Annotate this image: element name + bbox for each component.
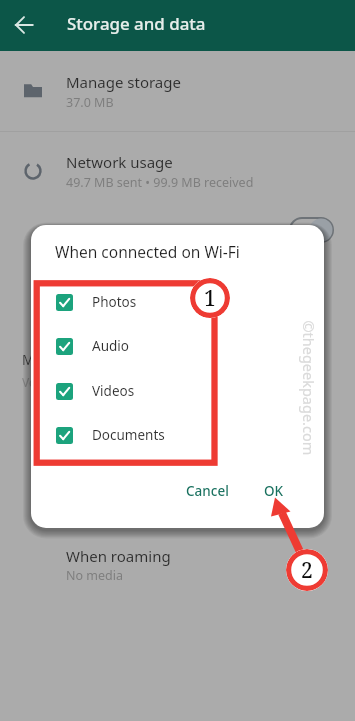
staticText: When connected on Wi-Fi [55,241,240,262]
button[interactable]: Network usage [0,138,355,194]
staticText: Cancel [186,482,229,500]
staticText: No media [66,567,123,584]
button[interactable]: Videos [31,371,324,411]
staticText: 49.7 MB sent • 99.9 MB received [66,174,254,191]
staticText: Documents [92,426,165,444]
staticText: 1 [204,284,216,313]
button[interactable]: Cancel [176,474,239,508]
button[interactable]: Photos [31,282,324,322]
staticText: Network usage [66,152,173,172]
staticText: Storage and data [67,12,206,35]
staticText: Voice messages are always [22,374,174,390]
button[interactable]: Manage storage [0,58,355,114]
staticText: Audio [92,337,129,355]
button[interactable]: Audio [31,326,324,366]
staticText: Media auto-download [22,351,161,369]
button[interactable]: Back [9,10,39,40]
staticText: ©thegeekpage.com [298,320,318,455]
staticText: 37.0 MB [66,94,114,111]
staticText: Photos [92,293,137,311]
button[interactable]: Documents [31,415,324,455]
staticText: 2 [301,556,313,585]
button[interactable]: OK [254,474,294,508]
staticText: Manage storage [66,72,181,92]
staticText: OK [264,482,284,500]
staticText: When roaming [66,546,171,566]
staticText: Videos [92,382,135,400]
